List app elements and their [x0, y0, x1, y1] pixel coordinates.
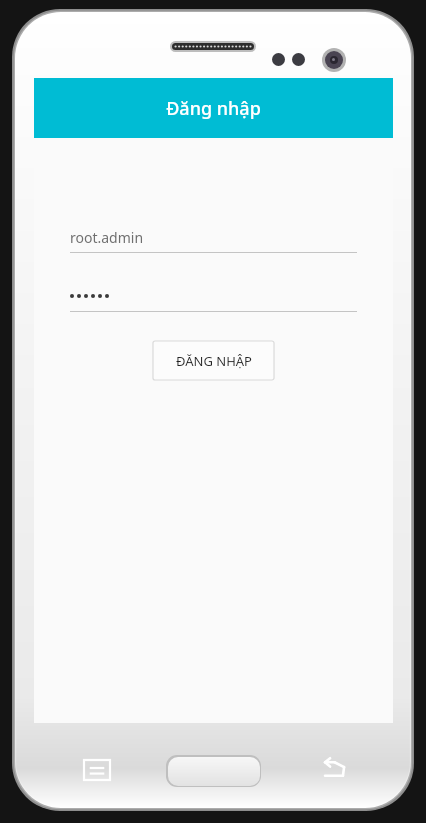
button[interactable]: Home	[168, 757, 260, 786]
button[interactable]: Back	[320, 757, 348, 781]
button[interactable]: Menu	[84, 760, 110, 780]
staticText: root.admin	[70, 228, 144, 247]
button[interactable]: ĐĂNG NHẬP	[153, 341, 274, 380]
button[interactable]	[70, 281, 357, 311]
staticText: ĐĂNG NHẬP	[176, 352, 252, 370]
staticText: Đăng nhập	[166, 96, 261, 121]
button[interactable]: root.admin	[70, 222, 357, 252]
